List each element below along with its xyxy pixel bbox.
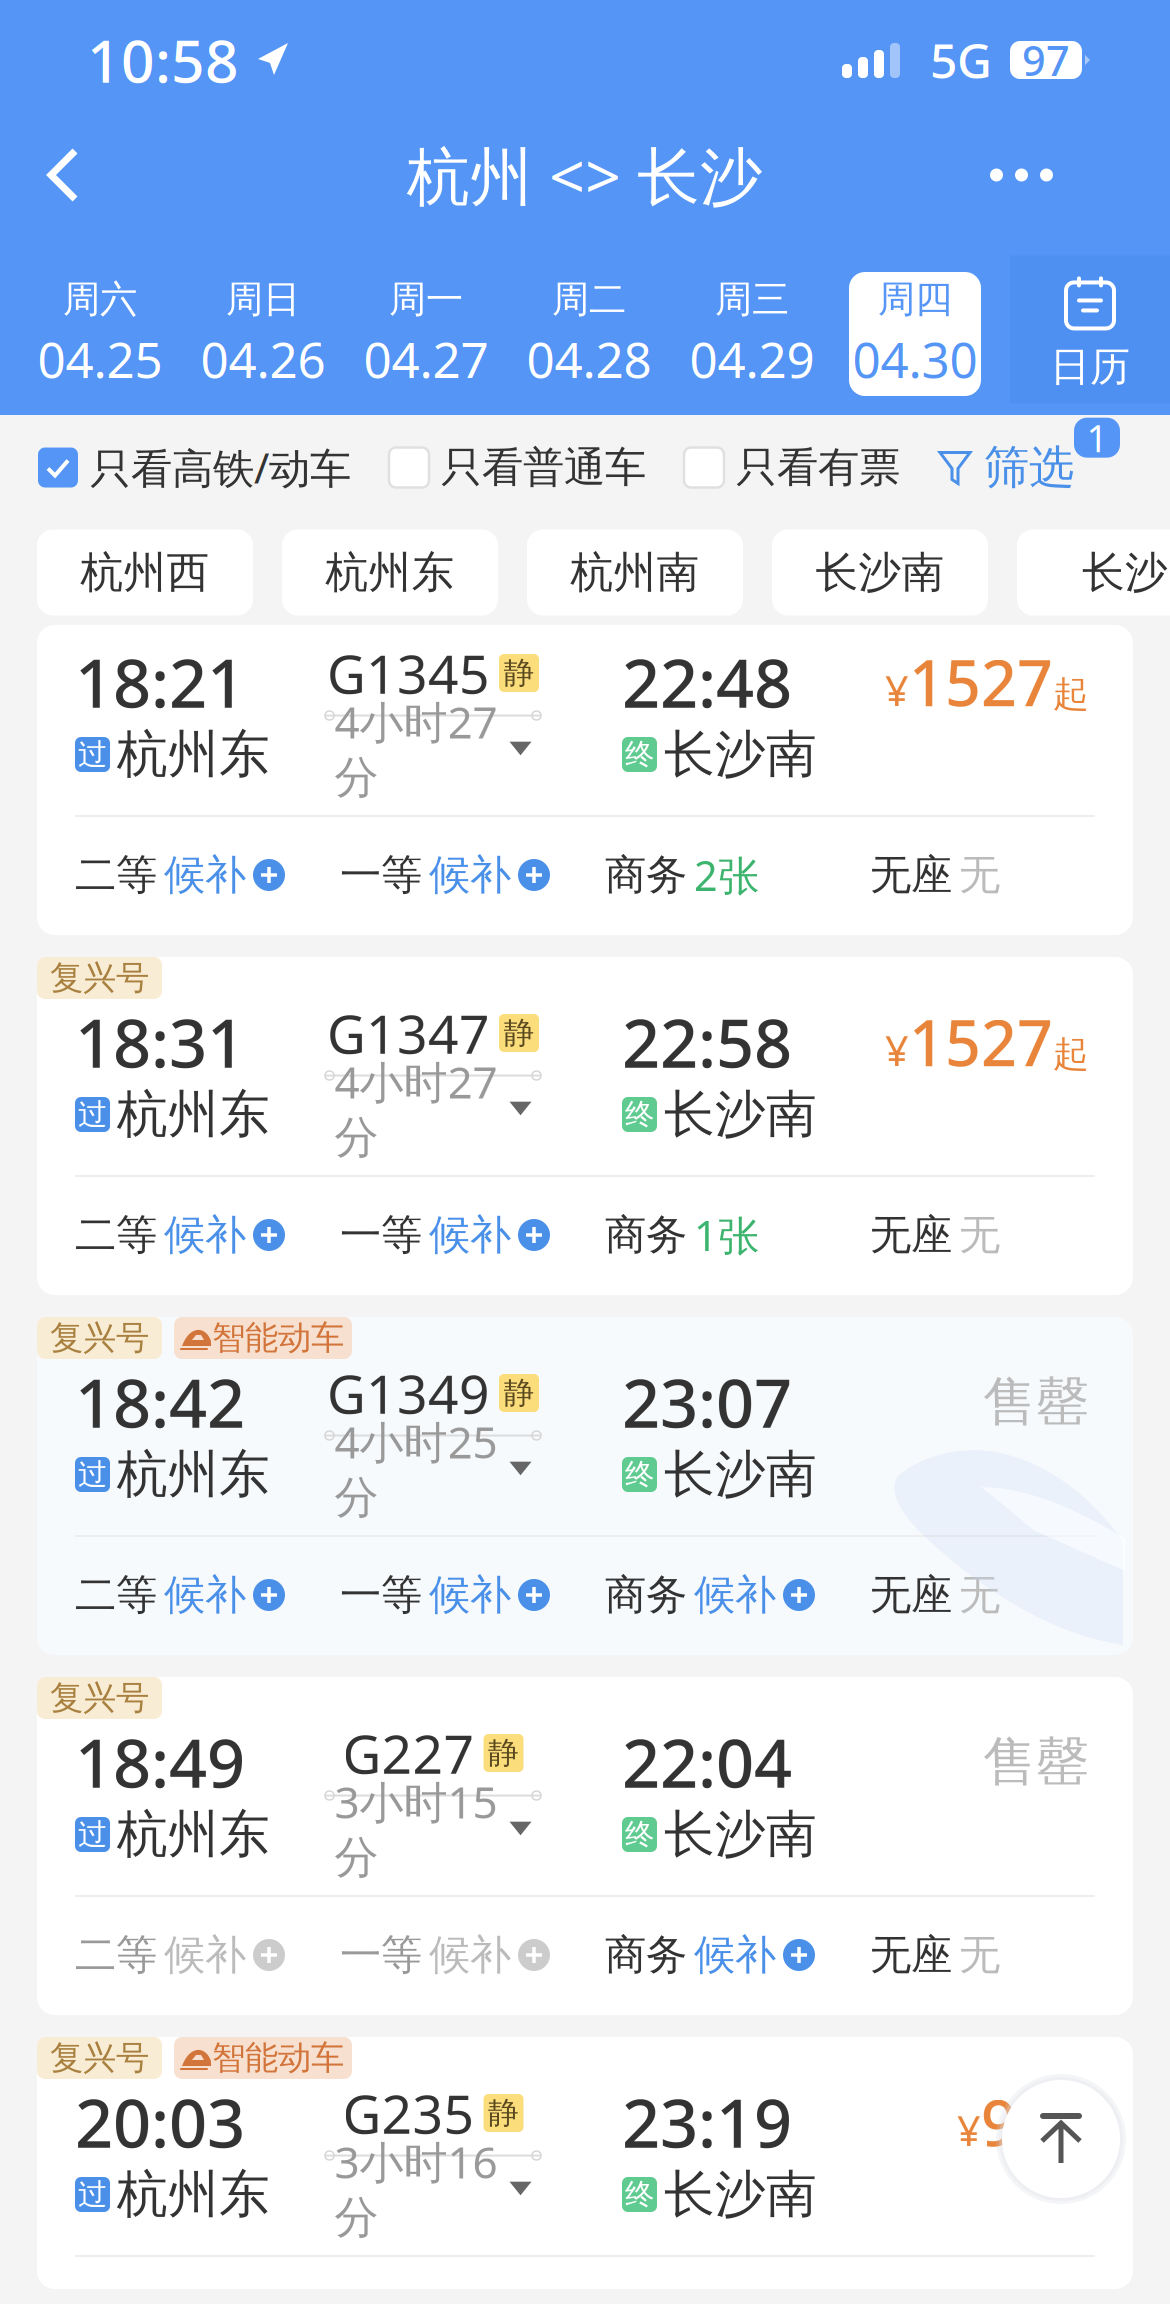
staticText: 杭州东 <box>117 2163 270 2226</box>
staticText: 23:07 <box>622 1358 792 1446</box>
staticText: 终 <box>625 1096 654 1132</box>
button[interactable]: More options <box>957 127 1053 223</box>
staticText: 静 <box>488 2094 519 2132</box>
staticText: 静 <box>503 654 534 692</box>
staticText: 长沙南 <box>664 1083 817 1146</box>
staticText: 候补 <box>694 1930 776 1980</box>
staticText: G1347 <box>327 998 490 1068</box>
staticText: 无 <box>959 1570 1000 1620</box>
staticText: 复兴号 <box>50 2037 149 2078</box>
staticText: 一等 <box>340 1210 422 1260</box>
button[interactable]: 18:49 <box>37 1677 1133 2015</box>
staticText: 终 <box>625 736 654 772</box>
staticText: 2张 <box>694 848 759 902</box>
button[interactable]: 周日 <box>197 272 329 396</box>
staticText: 1 <box>1086 413 1107 462</box>
staticText: 04.29 <box>689 326 814 392</box>
staticText: 18:31 <box>75 998 245 1086</box>
button[interactable]: 只看普通车 <box>389 442 646 493</box>
staticText: 筛选 <box>984 440 1074 495</box>
button[interactable]: Back <box>45 127 141 223</box>
staticText: 静 <box>503 1014 534 1052</box>
staticText: 周日 <box>226 276 300 322</box>
staticText: 无 <box>959 850 1000 900</box>
staticText: 周四 <box>878 276 952 322</box>
button[interactable]: 18:42 <box>37 1317 1133 1655</box>
staticText: 过 <box>78 1096 107 1132</box>
staticText: 长沙南 <box>664 723 817 786</box>
button[interactable]: 长沙 <box>1017 529 1170 615</box>
staticText: 杭州东 <box>117 1443 270 1506</box>
button[interactable]: 筛选 <box>938 440 1074 495</box>
staticText: 周二 <box>552 276 626 322</box>
staticText: 无座 <box>870 1210 952 1260</box>
staticText: ¥ <box>957 2103 981 2158</box>
staticText: 商务 <box>605 1930 687 1980</box>
staticText: 04.25 <box>37 326 162 392</box>
staticText: ¥ <box>885 663 909 718</box>
staticText: 过 <box>78 736 107 772</box>
staticText: 18:49 <box>75 1718 245 1806</box>
button[interactable]: Back to top <box>996 2074 1126 2204</box>
staticText: 长沙南 <box>664 1443 817 1506</box>
staticText: 周六 <box>63 276 137 322</box>
button[interactable]: 杭州南 <box>527 529 743 615</box>
button[interactable]: 只看有票 <box>684 442 900 493</box>
staticText: 04.28 <box>526 326 651 392</box>
staticText: 无 <box>959 1210 1000 1260</box>
staticText: 售罄 <box>983 1369 1089 1435</box>
staticText: 复兴号 <box>50 1677 149 1718</box>
staticText: 22:58 <box>622 998 792 1086</box>
staticText: 10:58 <box>87 21 239 99</box>
staticText: 候补 <box>429 1570 511 1620</box>
staticText: 18:21 <box>75 638 245 726</box>
staticText: 3小时16分 <box>334 2132 497 2245</box>
staticText: 90 <box>981 2080 1053 2164</box>
staticText: 04.30 <box>852 326 977 392</box>
staticText: 20:03 <box>75 2078 245 2166</box>
button[interactable]: 20:03 <box>37 2037 1133 2289</box>
button[interactable]: 日历 <box>1010 241 1170 426</box>
button[interactable]: 杭州东 <box>282 529 498 615</box>
staticText: 二等 <box>75 850 157 900</box>
button[interactable]: 长沙南 <box>772 529 988 615</box>
button[interactable]: 周四 <box>849 272 981 396</box>
staticText: 长沙 <box>1082 546 1168 599</box>
staticText: 静 <box>488 1734 519 1772</box>
button[interactable]: 18:31 <box>37 957 1133 1295</box>
staticText: 长沙南 <box>815 546 944 599</box>
staticText: 过 <box>78 1816 107 1852</box>
button[interactable]: 周二 <box>523 272 655 396</box>
staticText: 候补 <box>694 1570 776 1620</box>
staticText: 一等 <box>340 1930 422 1980</box>
staticText: 无 <box>959 1930 1000 1980</box>
staticText: 1527 <box>909 640 1053 724</box>
button[interactable]: 杭州西 <box>37 529 253 615</box>
staticText: 只看普通车 <box>441 442 646 493</box>
staticText: 只看有票 <box>736 442 900 493</box>
staticText: 起 <box>1053 1032 1089 1076</box>
staticText: 复兴号 <box>50 957 149 998</box>
staticText: 二等 <box>75 1570 157 1620</box>
button[interactable]: 周三 <box>686 272 818 396</box>
button[interactable]: 18:21 <box>37 625 1133 935</box>
staticText: 无座 <box>870 1570 952 1620</box>
button[interactable]: 周六 <box>34 272 166 396</box>
staticText: 日历 <box>1050 342 1130 391</box>
staticText: G227 <box>342 1718 474 1788</box>
staticText: 过 <box>78 1456 107 1492</box>
staticText: 1张 <box>694 1208 759 1262</box>
staticText: 候补 <box>429 850 511 900</box>
staticText: 杭州东 <box>325 546 454 599</box>
staticText: 候补 <box>164 1930 246 1980</box>
staticText: 候补 <box>429 1210 511 1260</box>
button[interactable]: 周一 <box>360 272 492 396</box>
staticText: 终 <box>625 1816 654 1852</box>
staticText: 一等 <box>340 1570 422 1620</box>
staticText: G1345 <box>327 638 490 708</box>
staticText: 二等 <box>75 1930 157 1980</box>
button[interactable]: 只看高铁/动车 <box>38 440 351 495</box>
staticText: 过 <box>78 2176 107 2212</box>
staticText: 04.27 <box>363 326 488 392</box>
staticText: 04.26 <box>200 326 325 392</box>
